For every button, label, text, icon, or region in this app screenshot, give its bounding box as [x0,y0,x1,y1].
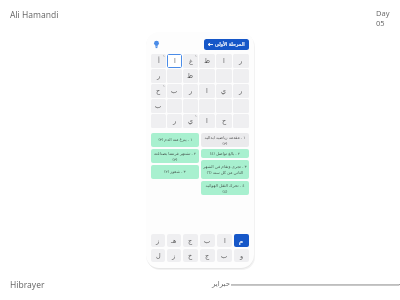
staticText: ب [155,102,162,110]
staticText: ٢ - بالغ تواصل (٤) [210,151,240,157]
button[interactable]: م [234,234,249,247]
staticText: ٢ - تشتهر فرنسا بصناعته (٣) [153,151,197,162]
staticText: ا [223,57,225,65]
button[interactable]: Hint [151,39,162,50]
button[interactable]: ا [216,54,232,68]
button[interactable]: ي [183,114,198,128]
button[interactable]: ح [151,84,166,98]
button[interactable]: ج [183,234,198,247]
staticText: ر [239,87,243,95]
button[interactable]: و [234,249,249,262]
button[interactable]: ١ - مقدمة رياضية ابدالية (٣) [201,133,249,147]
staticText: ي [221,87,227,95]
staticText: ١ [195,114,197,118]
staticText: هـ [171,237,177,245]
staticText: ب [171,87,178,95]
staticText: خ [188,252,193,260]
staticText: أ [158,57,160,65]
staticText: ب [221,252,228,260]
button[interactable]: أ [151,54,166,68]
button[interactable]: ا [199,84,215,98]
button[interactable]: ٤ - تحرك الثقل الهوائية (٤) [201,181,249,195]
staticText: ر [157,72,161,80]
button[interactable]: ظ [199,54,215,68]
staticText: ح [222,117,227,125]
staticText: حبراير [212,280,231,288]
staticText: 05 [376,18,385,28]
button[interactable]: المرحلة الأولى [204,39,249,50]
staticText: ١ [163,84,165,88]
staticText: ١ - ينزع منه الدم (٣) [158,137,193,143]
staticText: ز [156,237,160,245]
staticText: ٤ - تحرك الثقل الهوائية (٤) [203,183,247,194]
button[interactable]: ب [167,84,182,98]
button[interactable]: ا [199,114,215,128]
staticText: ١ - مقدمة رياضية ابدالية (٣) [203,135,247,146]
button[interactable]: ب [151,99,166,113]
staticText: و [240,252,244,260]
button[interactable]: ظ [183,69,198,83]
staticText: ي [188,117,194,125]
staticText: غ [189,57,193,65]
button[interactable]: ز [167,249,181,262]
staticText: ز [172,252,176,260]
staticText: ٣ - شعور (٢) [164,169,186,175]
button[interactable]: ل [151,249,165,262]
button[interactable]: ٣ - شعور (٢) [151,165,199,179]
staticText: ١ [163,54,165,58]
button[interactable]: ا [217,234,232,247]
staticText: ر [189,87,193,95]
button[interactable]: ٣ - تجري وتقام في الشهر الثاني من كل سنة… [201,160,249,179]
button[interactable]: ١ - ينزع منه الدم (٣) [151,133,199,147]
staticText: Hibrayer [10,279,45,291]
staticText: ل [156,252,161,260]
button[interactable]: ب [217,249,232,262]
staticText: ا [224,237,226,245]
button[interactable]: ر [233,84,249,98]
staticText: م [239,237,244,245]
button[interactable]: ٢ - تشتهر فرنسا بصناعته (٣) [151,149,199,163]
button[interactable]: ر [183,84,198,98]
button[interactable]: ٢ - بالغ تواصل (٤) [201,149,249,158]
staticText: ا [206,87,208,95]
button[interactable]: ي [216,84,232,98]
staticText: ١ [195,54,197,58]
staticText: ا [206,117,208,125]
staticText: ب [204,237,211,245]
staticText: Day [376,8,390,18]
staticText: ا [174,57,176,65]
button[interactable]: ز [151,234,165,247]
staticText: المرحلة الأولى [215,41,245,48]
button[interactable]: ج [200,249,215,262]
staticText: ح [156,87,161,95]
button[interactable]: ا [167,54,182,68]
staticText: ظ [204,57,211,65]
staticText: Ali Hamandi [10,9,59,21]
button[interactable]: خ [183,249,198,262]
button[interactable]: ح [216,114,232,128]
button[interactable]: غ [183,54,198,68]
staticText: ج [188,237,193,245]
staticText: ر [239,57,243,65]
button[interactable]: ر [151,69,166,83]
staticText: ٣ - تجري وتقام في الشهر الثاني من كل سنة… [203,164,247,175]
button[interactable]: هـ [167,234,181,247]
button[interactable]: ر [233,54,249,68]
staticText: ر [173,117,177,125]
staticText: ظ [187,72,194,80]
staticText: ج [205,252,210,260]
button[interactable]: ب [200,234,215,247]
button[interactable]: ر [167,114,182,128]
